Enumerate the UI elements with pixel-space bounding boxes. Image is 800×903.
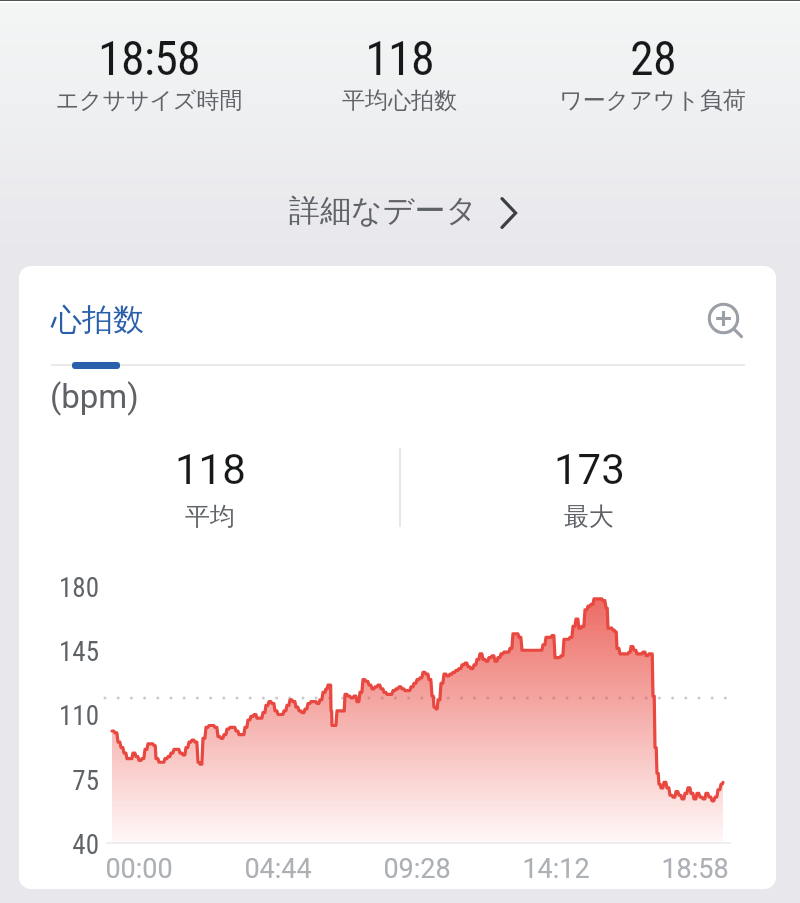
staticText: 18:58 xyxy=(650,853,740,885)
staticText: ワークアウト負荷 xyxy=(559,86,746,115)
staticText: 28 xyxy=(630,30,676,86)
staticText: エクササイズ時間 xyxy=(55,86,243,115)
staticText: 最大 xyxy=(564,501,614,532)
staticText: 180 xyxy=(41,572,99,604)
button[interactable]: 詳細なデータ xyxy=(273,185,536,236)
button[interactable]: 28 xyxy=(519,30,786,115)
staticText: 118 xyxy=(365,30,434,86)
staticText: 04:44 xyxy=(233,853,323,885)
button[interactable]: 118 xyxy=(266,30,533,115)
staticText: 145 xyxy=(41,636,99,668)
staticText: 09:28 xyxy=(372,853,462,885)
button[interactable]: 心拍数 xyxy=(45,284,147,370)
staticText: 平均 xyxy=(185,501,235,532)
staticText: (bpm) xyxy=(50,377,139,416)
staticText: 詳細なデータ xyxy=(289,191,478,230)
staticText: 平均心拍数 xyxy=(342,86,457,115)
staticText: 00:00 xyxy=(94,853,184,885)
staticText: 18:58 xyxy=(98,30,200,86)
staticText: 173 xyxy=(554,445,625,494)
button[interactable]: 18:58 xyxy=(16,30,282,115)
staticText: 118 xyxy=(175,445,246,494)
staticText: 110 xyxy=(41,700,99,732)
staticText: 40 xyxy=(41,829,99,861)
staticText: 14:12 xyxy=(511,853,601,885)
staticText: 75 xyxy=(41,765,99,797)
button[interactable]: Zoom in xyxy=(699,294,749,344)
staticText: 心拍数 xyxy=(51,300,144,339)
